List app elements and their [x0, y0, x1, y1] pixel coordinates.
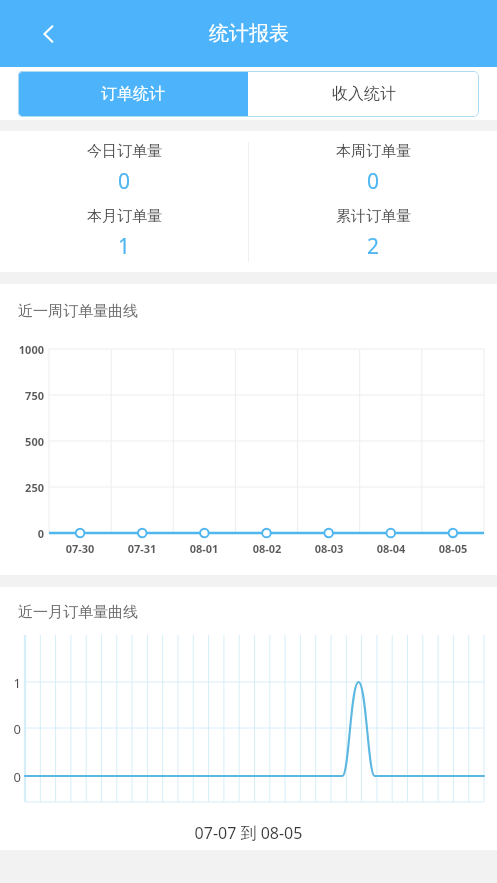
staticText: 今日订单量 — [87, 142, 162, 161]
staticText: 750 — [0, 388, 44, 403]
staticText: 07-31 — [111, 541, 173, 556]
staticText: 500 — [0, 434, 44, 449]
staticText: 250 — [0, 480, 44, 495]
staticText: 0 — [0, 720, 21, 738]
staticText: 08-02 — [236, 541, 298, 556]
staticText: 订单统计 — [101, 84, 165, 104]
staticText: 1 — [0, 674, 21, 692]
staticText: 0 — [367, 167, 380, 196]
staticText: 07-30 — [49, 541, 111, 556]
staticText: 近一周订单量曲线 — [18, 302, 138, 321]
button[interactable]: 收入统计 — [248, 71, 479, 117]
staticText: 1 — [118, 232, 131, 261]
staticText: 08-01 — [173, 541, 235, 556]
staticText: 本周订单量 — [336, 142, 411, 161]
staticText: 2 — [367, 232, 380, 261]
staticText: 收入统计 — [332, 84, 396, 104]
staticText: 08-04 — [360, 541, 422, 556]
button[interactable]: 订单统计 — [18, 71, 248, 117]
staticText: 08-05 — [422, 541, 484, 556]
staticText: 08-03 — [298, 541, 360, 556]
staticText: 累计订单量 — [336, 207, 411, 226]
staticText: 1000 — [0, 342, 44, 357]
staticText: 07-07 到 08-05 — [0, 822, 497, 844]
staticText: 0 — [0, 526, 44, 541]
staticText: 近一月订单量曲线 — [18, 603, 138, 622]
button[interactable]: Back — [26, 11, 72, 57]
staticText: 0 — [118, 167, 131, 196]
staticText: 统计报表 — [209, 21, 289, 46]
staticText: 本月订单量 — [87, 207, 162, 226]
staticText: 0 — [0, 768, 21, 786]
